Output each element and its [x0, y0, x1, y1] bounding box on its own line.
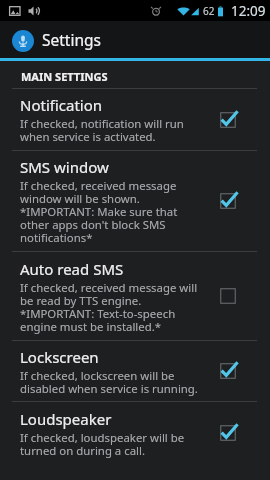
staticText: Auto read SMS — [20, 259, 124, 279]
button[interactable]: Checked — [206, 411, 250, 455]
button[interactable]: Checked — [206, 98, 250, 142]
button[interactable]: Notification — [0, 89, 270, 150]
button[interactable]: Loudspeaker — [0, 402, 270, 480]
button[interactable]: SMS window — [0, 151, 270, 251]
button[interactable]: Lockscreen — [0, 341, 270, 401]
staticText: Loudspeaker — [20, 409, 112, 429]
button[interactable]: Checked — [206, 179, 250, 223]
staticText: MAIN SETTINGS — [21, 69, 108, 84]
button[interactable]: Settings — [0, 21, 270, 58]
staticText: 12:09 — [231, 2, 266, 20]
staticText: If checked, received message window will… — [20, 180, 178, 245]
staticText: If checked, notification will run when s… — [20, 118, 184, 144]
staticText: Lockscreen — [20, 347, 99, 367]
staticText: SMS window — [20, 157, 109, 177]
button[interactable]: Checked — [206, 349, 250, 393]
staticText: If checked, lockscreen will be disabled … — [20, 370, 198, 396]
button[interactable]: Unchecked — [206, 274, 250, 318]
button[interactable]: Auto read SMS — [0, 252, 270, 340]
staticText: If checked, loudspeaker will be turned o… — [20, 432, 185, 458]
staticText: Settings — [42, 29, 101, 50]
staticText: If checked, received message will be rea… — [20, 282, 198, 334]
staticText: Notification — [20, 95, 103, 115]
staticText: 62 — [203, 4, 215, 18]
